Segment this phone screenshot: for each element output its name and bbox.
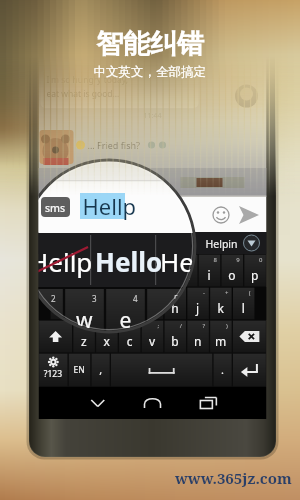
button[interactable] xyxy=(0,0,300,500)
